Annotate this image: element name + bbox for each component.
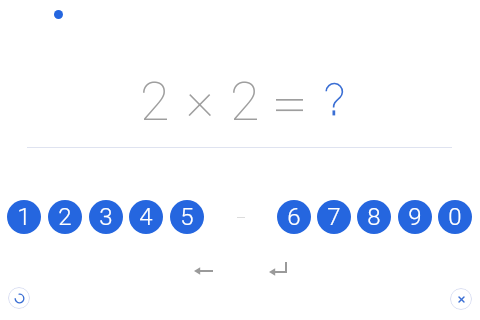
button[interactable]: 6 xyxy=(277,200,311,234)
staticText: 2 xyxy=(140,70,170,133)
button[interactable]: Backspace xyxy=(187,255,219,287)
button[interactable]: 1 xyxy=(7,200,41,234)
staticText: 2 xyxy=(58,203,72,231)
button[interactable]: 7 xyxy=(317,200,351,234)
staticText: 3 xyxy=(99,203,113,231)
button[interactable]: 2 xyxy=(48,200,82,234)
button[interactable]: Restart xyxy=(8,287,30,309)
button[interactable]: 4 xyxy=(129,200,163,234)
staticText: 6 xyxy=(287,203,301,231)
button[interactable]: 8 xyxy=(357,200,391,234)
staticText: 1 xyxy=(17,203,31,231)
button[interactable]: 3 xyxy=(89,200,123,234)
staticText: × xyxy=(186,66,214,129)
button[interactable]: Enter xyxy=(262,252,294,284)
button[interactable]: 5 xyxy=(170,200,204,234)
staticText: 9 xyxy=(408,203,422,231)
button[interactable]: Close xyxy=(450,288,472,310)
button[interactable]: 9 xyxy=(398,200,432,234)
staticText: 2 xyxy=(230,70,260,133)
staticText: 4 xyxy=(139,203,153,231)
button[interactable]: 0 xyxy=(438,200,472,234)
staticText: 7 xyxy=(327,203,341,231)
staticText: 0 xyxy=(448,203,462,231)
staticText: 8 xyxy=(367,203,381,231)
staticText: 5 xyxy=(180,203,194,231)
